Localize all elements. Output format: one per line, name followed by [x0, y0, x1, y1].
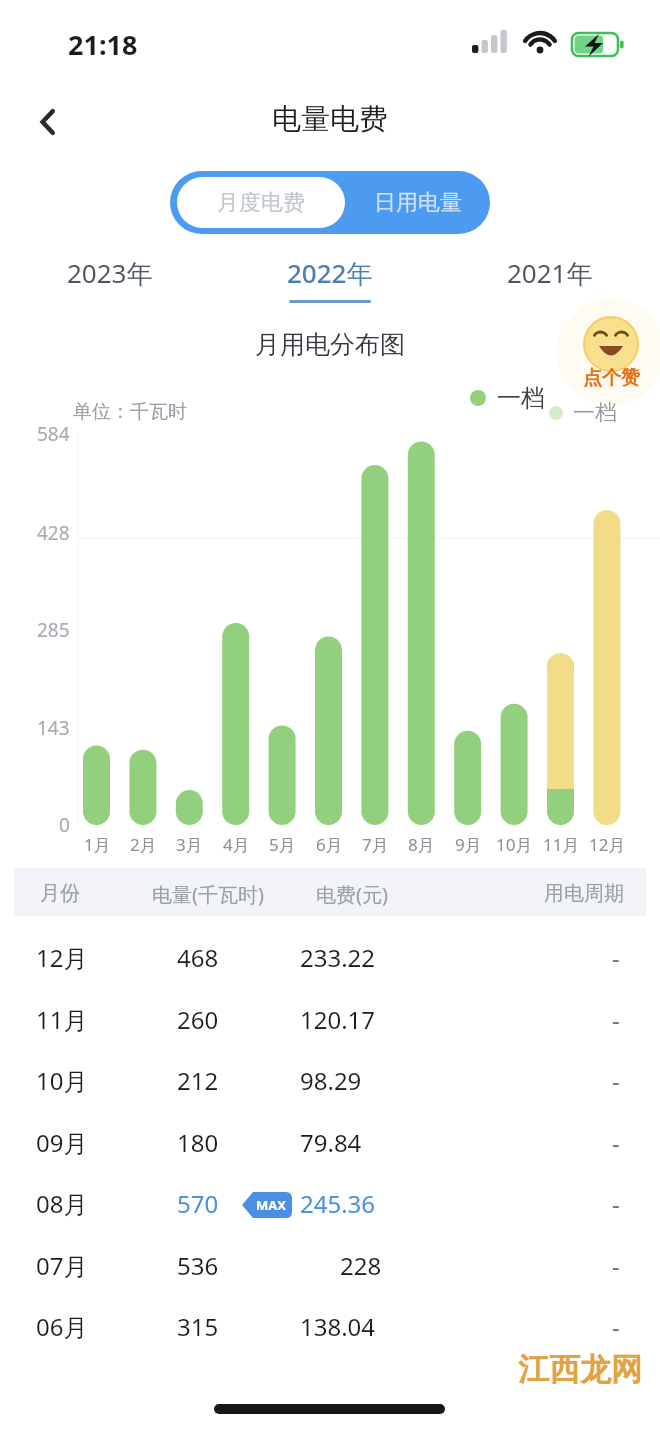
staticText: 电费(元): [316, 881, 388, 908]
staticText: 120.17: [300, 1003, 376, 1036]
staticText: 5月: [269, 833, 296, 856]
staticText: 12月: [36, 941, 88, 974]
staticText: 536: [177, 1249, 219, 1282]
staticText: 228: [340, 1249, 382, 1282]
staticText: 11月: [543, 833, 580, 856]
staticText: 428: [37, 520, 70, 546]
staticText: 07月: [36, 1249, 88, 1282]
staticText: -: [612, 941, 620, 974]
button[interactable]: 2021年: [475, 255, 625, 315]
button[interactable]: 10月: [0, 1048, 660, 1109]
staticText: 79.84: [300, 1126, 362, 1159]
staticText: 单位：千瓦时: [73, 400, 187, 424]
button[interactable]: 日用电量: [346, 171, 490, 234]
staticText: 2月: [130, 833, 157, 856]
staticText: 8月: [408, 833, 435, 856]
button[interactable]: 月度电费: [177, 177, 345, 228]
staticText: 08月: [36, 1187, 88, 1220]
staticText: 点个赞: [583, 366, 640, 390]
button[interactable]: 2023年: [35, 255, 185, 315]
staticText: 9月: [455, 833, 482, 856]
staticText: -: [612, 1310, 620, 1343]
staticText: MAX: [256, 1196, 286, 1214]
staticText: 月用电分布图: [255, 329, 405, 360]
button[interactable]: 一档: [470, 383, 545, 413]
staticText: 180: [177, 1126, 219, 1159]
staticText: 2022年: [287, 255, 373, 291]
staticText: 285: [37, 617, 70, 643]
staticText: 2021年: [507, 255, 593, 291]
staticText: 电量电费: [272, 101, 388, 138]
button[interactable]: 07月: [0, 1233, 660, 1294]
staticText: 11月: [36, 1003, 88, 1036]
staticText: 260: [177, 1003, 219, 1036]
staticText: 09月: [36, 1126, 88, 1159]
staticText: 一档: [573, 399, 617, 427]
staticText: 1月: [84, 833, 111, 856]
button[interactable]: Back: [16, 92, 80, 152]
staticText: 12月: [589, 833, 626, 856]
staticText: 10月: [496, 833, 533, 856]
staticText: 143: [37, 715, 70, 741]
staticText: 2023年: [67, 255, 153, 291]
button[interactable]: 09月: [0, 1110, 660, 1171]
staticText: 用电周期: [544, 881, 624, 906]
button[interactable]: 06月: [0, 1294, 660, 1355]
staticText: 138.04: [300, 1310, 376, 1343]
staticText: 21:18: [68, 26, 138, 63]
staticText: 0: [59, 812, 70, 838]
button[interactable]: 12月: [0, 925, 660, 986]
staticText: 一档: [497, 383, 545, 413]
staticText: 电量(千瓦时): [152, 881, 264, 908]
button[interactable]: 11月: [0, 987, 660, 1048]
staticText: 3月: [176, 833, 203, 856]
staticText: 98.29: [300, 1064, 362, 1097]
staticText: 月份: [40, 881, 80, 906]
staticText: 570: [177, 1187, 219, 1220]
staticText: -: [612, 1249, 620, 1282]
staticText: 10月: [36, 1064, 88, 1097]
staticText: 584: [37, 421, 70, 447]
staticText: -: [612, 1003, 620, 1036]
staticText: -: [612, 1187, 620, 1220]
staticText: -: [612, 1064, 620, 1097]
staticText: 4月: [223, 833, 250, 856]
staticText: 6月: [316, 833, 343, 856]
staticText: 233.22: [300, 941, 376, 974]
staticText: 7月: [362, 833, 389, 856]
staticText: 315: [177, 1310, 219, 1343]
button[interactable]: 2022年: [255, 255, 405, 315]
staticText: 江西龙网: [518, 1350, 642, 1389]
staticText: 06月: [36, 1310, 88, 1343]
staticText: 212: [177, 1064, 219, 1097]
staticText: -: [612, 1126, 620, 1159]
staticText: 468: [177, 941, 219, 974]
staticText: 月度电费: [217, 189, 305, 217]
button[interactable]: 08月: [0, 1171, 660, 1232]
staticText: 日用电量: [374, 189, 462, 217]
staticText: 245.36: [300, 1187, 376, 1220]
